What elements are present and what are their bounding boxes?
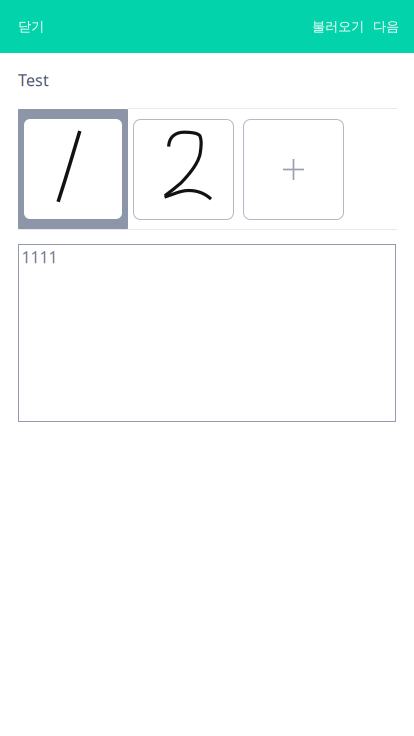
staticText: 불러오기 (312, 18, 364, 35)
button[interactable]: 닫기 (0, 0, 80, 53)
staticText: Test (18, 69, 49, 91)
staticText: 다음 (373, 18, 399, 35)
staticText: 1111 (21, 246, 57, 268)
button[interactable]: 다음 (362, 0, 410, 53)
button[interactable]: Page 1, selected (18, 109, 128, 229)
button[interactable]: Page 2 (133, 119, 233, 219)
button[interactable]: Recognised text (18, 244, 395, 421)
button[interactable]: Add page (243, 119, 343, 219)
button[interactable]: 불러오기 (304, 0, 372, 53)
staticText: 닫기 (18, 18, 44, 35)
